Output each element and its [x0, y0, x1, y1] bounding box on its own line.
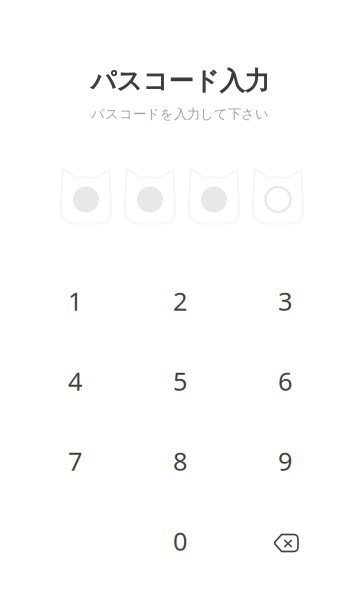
- button[interactable]: 3: [232, 261, 337, 341]
- button[interactable]: 6: [232, 341, 337, 421]
- staticText: 7: [68, 444, 82, 478]
- button[interactable]: 1: [22, 261, 127, 341]
- button[interactable]: 4: [22, 341, 127, 421]
- button[interactable]: 7: [22, 421, 127, 501]
- button[interactable]: 0: [127, 501, 232, 581]
- staticText: 3: [278, 284, 292, 318]
- button[interactable]: 8: [127, 421, 232, 501]
- staticText: パスコード入力: [90, 65, 269, 96]
- button[interactable]: 2: [127, 261, 232, 341]
- button[interactable]: 5: [127, 341, 232, 421]
- staticText: 8: [173, 444, 187, 478]
- button[interactable]: Delete: [232, 501, 337, 581]
- button[interactable]: 9: [232, 421, 337, 501]
- staticText: 9: [278, 444, 292, 478]
- staticText: 4: [68, 364, 82, 398]
- staticText: 1: [68, 284, 82, 318]
- staticText: 5: [173, 364, 187, 398]
- staticText: パスコードを入力して下さい: [91, 106, 269, 122]
- staticText: 0: [173, 524, 187, 558]
- staticText: 6: [278, 364, 292, 398]
- staticText: 2: [173, 284, 187, 318]
